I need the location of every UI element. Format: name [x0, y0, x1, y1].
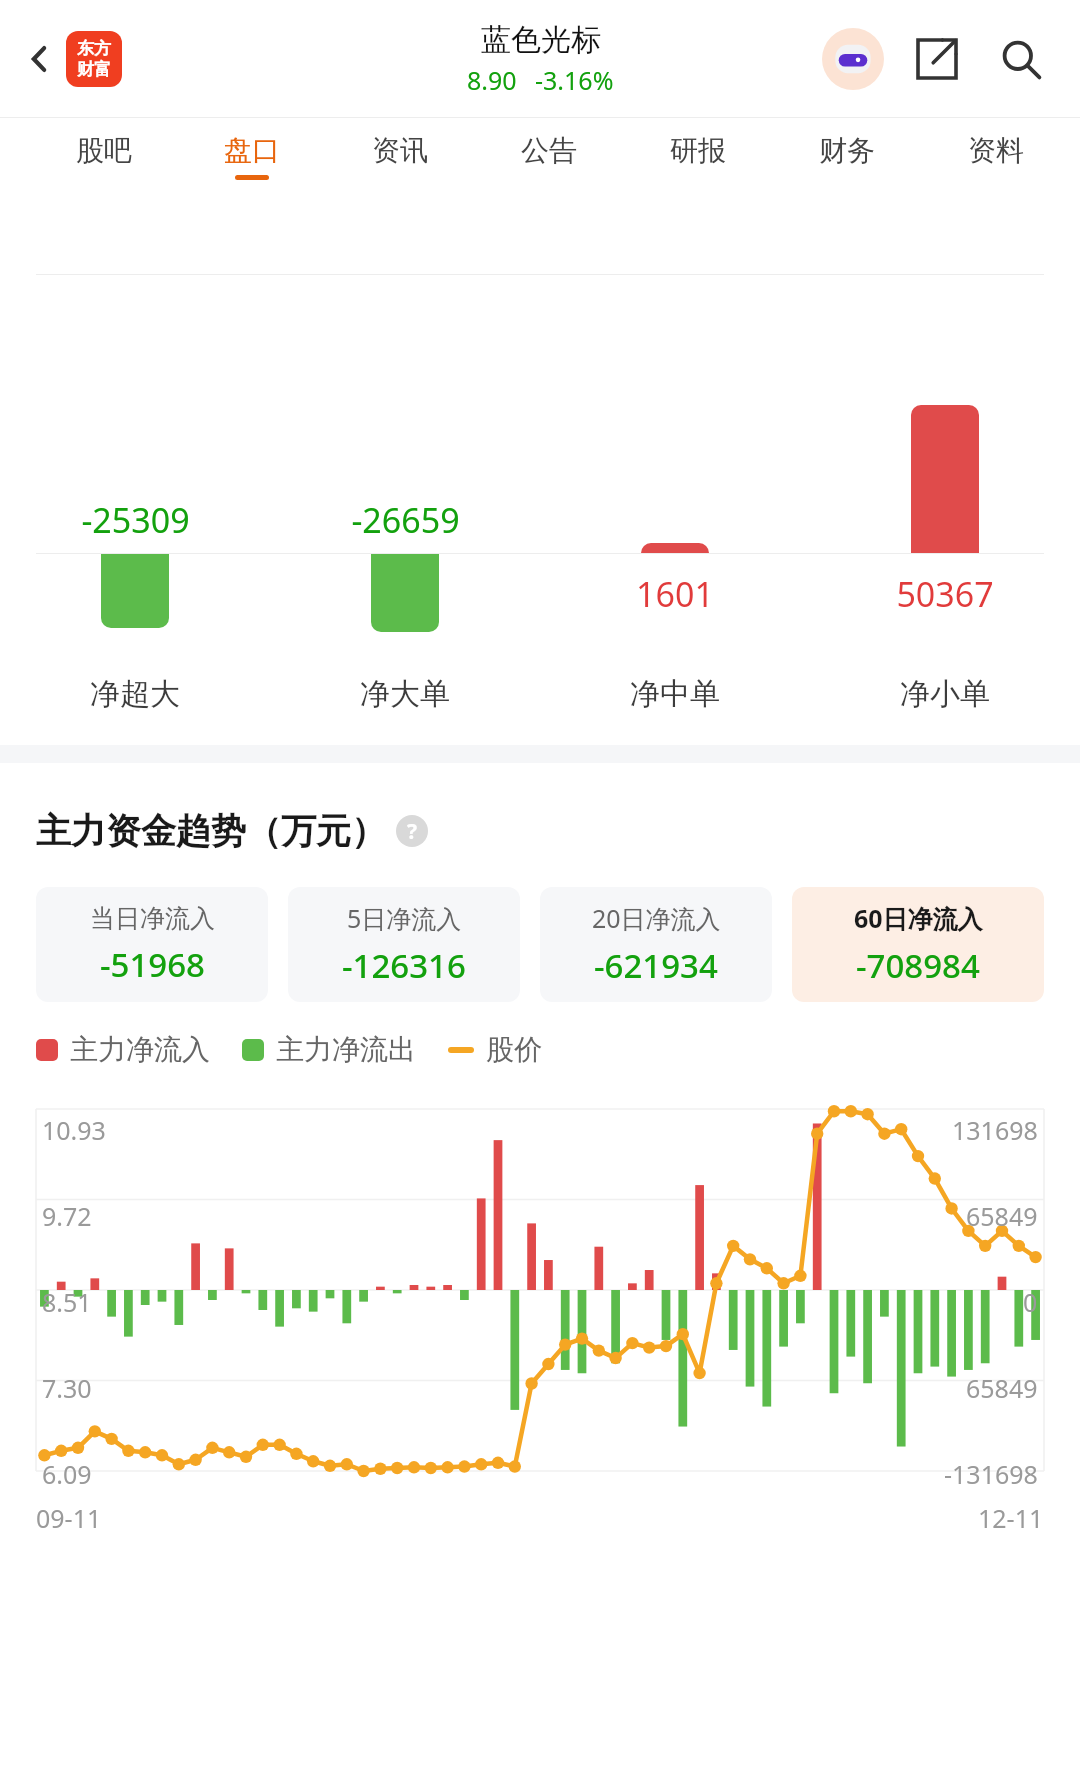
staticText: 净超大 [90, 675, 180, 713]
button[interactable]: 当日净流入 [36, 887, 268, 1002]
button[interactable]: Help [396, 815, 428, 847]
button[interactable]: 60日净流入 [792, 887, 1044, 1002]
staticText: 65849 [966, 1199, 1038, 1233]
staticText: 股价 [486, 1032, 542, 1067]
staticText: 当日净流入 [90, 903, 215, 934]
button[interactable]: 20日净流入 [540, 887, 772, 1002]
staticText: 主力净流入 [70, 1032, 210, 1067]
staticText: 10.93 [42, 1113, 106, 1147]
button[interactable]: 研报 [623, 118, 772, 195]
staticText: 财富 [77, 59, 111, 80]
staticText: 研报 [670, 133, 726, 168]
staticText: 6.09 [42, 1457, 92, 1491]
staticText: -131698 [944, 1457, 1038, 1491]
staticText: 12-11 [978, 1501, 1044, 1535]
button[interactable]: 5日净流入 [288, 887, 520, 1002]
staticText: -25309 [81, 497, 190, 543]
staticText: 净小单 [900, 675, 990, 713]
button[interactable]: 股吧 [30, 118, 178, 195]
button[interactable]: Share [906, 28, 968, 90]
staticText: 资料 [968, 133, 1024, 168]
staticText: -26659 [351, 497, 460, 543]
button[interactable]: Back [14, 33, 66, 85]
staticText: 主力资金趋势（万元） [36, 809, 386, 853]
staticText: 131698 [952, 1113, 1038, 1147]
staticText: 60日净流入 [854, 901, 983, 935]
staticText: 1601 [636, 571, 714, 617]
staticText: 东方 [77, 38, 111, 59]
staticText: 主力净流出 [276, 1032, 416, 1067]
staticText: 65849 [966, 1371, 1038, 1405]
staticText: -3.16% [535, 63, 614, 97]
button[interactable]: 财务 [772, 118, 921, 195]
staticText: 5日净流入 [347, 901, 462, 935]
staticText: 7.30 [42, 1371, 92, 1405]
staticText: 0 [1023, 1285, 1038, 1319]
button[interactable]: 东方 [66, 31, 122, 87]
staticText: 蓝色光标 [481, 21, 601, 59]
button[interactable]: Search [990, 28, 1052, 90]
staticText: 09-11 [36, 1501, 102, 1535]
staticText: -708984 [856, 943, 980, 988]
button[interactable]: 盘口 [178, 118, 326, 195]
staticText: 50367 [896, 571, 994, 617]
staticText: 盘口 [224, 133, 280, 168]
staticText: -126316 [342, 943, 466, 988]
staticText: 股吧 [76, 133, 132, 168]
button[interactable]: 资料 [921, 118, 1070, 195]
staticText: -621934 [594, 943, 718, 988]
staticText: 9.72 [42, 1199, 92, 1233]
staticText: 净大单 [360, 675, 450, 713]
staticText: ? [407, 817, 418, 846]
staticText: 财务 [819, 133, 875, 168]
button[interactable]: 公告 [474, 118, 623, 195]
button[interactable]: 资讯 [326, 118, 474, 195]
button[interactable]: Assistant [822, 28, 884, 90]
staticText: 公告 [521, 133, 577, 168]
staticText: 8.90 [467, 63, 517, 97]
staticText: 资讯 [372, 133, 428, 168]
staticText: -51968 [100, 942, 205, 987]
staticText: 20日净流入 [592, 901, 721, 935]
staticText: 8.51 [42, 1285, 92, 1319]
staticText: 净中单 [630, 675, 720, 713]
